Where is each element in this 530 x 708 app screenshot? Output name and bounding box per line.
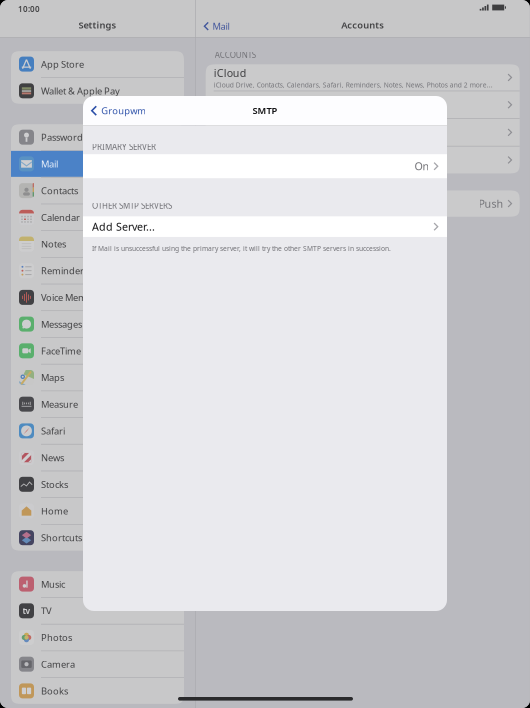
button[interactable]: Safari [11,418,184,444]
staticText: Measure [41,398,78,410]
button[interactable]: Mail [11,151,184,177]
staticText: Accounts [341,19,384,31]
button[interactable]: Push [206,190,520,217]
staticText: Passwords [41,131,87,143]
button[interactable]: Notes [11,231,184,257]
staticText: Photos [41,631,72,644]
staticText: Groupwm [101,104,146,117]
button[interactable]: Books [11,678,184,704]
staticText: SMTP [252,104,277,117]
button[interactable]: On [83,154,447,178]
button[interactable]: Maps [11,364,184,390]
staticText: Mail [41,158,58,170]
staticText: Wallet & Apple Pay [41,85,120,97]
button[interactable]: tv [11,598,184,624]
staticText: Push [478,196,503,211]
staticText: tv [22,605,30,616]
staticText: App Store [41,58,84,70]
staticText: Music [41,578,65,590]
button[interactable]: Messages [11,311,184,337]
staticText: Messages [41,318,82,330]
staticText: OTHER SMTP SERVERS [92,200,172,211]
staticText: Reminders [41,264,88,277]
button[interactable]: Camera [11,651,184,677]
button[interactable]: Account [206,146,520,173]
button[interactable]: FaceTime [11,338,184,364]
button[interactable]: Voice Memos [11,284,184,310]
staticText: Add Server... [92,220,155,234]
staticText: On [414,159,429,173]
button[interactable]: Photos [11,624,184,650]
button[interactable]: Account [206,91,520,118]
button[interactable]: Home [11,498,184,524]
staticText: FaceTime [41,345,81,357]
staticText: Maps [41,371,64,384]
button[interactable]: Add Server... [83,216,447,237]
button[interactable]: App Store [11,51,184,77]
staticText: Notes [41,238,66,250]
button[interactable]: Measure [11,391,184,417]
button[interactable]: Wallet & Apple Pay [11,78,184,104]
staticText: Mail [213,20,230,32]
button[interactable]: iCloud [206,64,520,91]
staticText: Calendar [41,211,80,223]
staticText: Camera [41,658,75,670]
staticText: iCloud Drive, Contacts, Calendars, Safar… [214,80,493,89]
staticText: iCloud [214,66,247,80]
staticText: PRIMARY SERVER [92,142,156,152]
staticText: Voice Memos [41,291,97,304]
staticText: Settings [78,19,116,31]
button[interactable]: News [11,445,184,471]
staticText: Safari [41,425,65,437]
button[interactable]: Groupwm [83,96,150,125]
button[interactable]: Stocks [11,471,184,497]
staticText: Shortcuts [41,531,82,544]
button[interactable]: Calendar [11,204,184,230]
staticText: If Mail is unsuccessful using the primar… [92,244,391,253]
button[interactable]: Contacts [11,178,184,204]
button[interactable]: Account [206,119,520,146]
staticText: Contacts [41,184,78,197]
button[interactable]: Shortcuts [11,525,184,551]
staticText: Home [41,505,68,517]
button[interactable]: Music [11,571,184,597]
staticText: Books [41,685,68,697]
button[interactable]: Mail [196,14,235,38]
staticText: TV [41,605,52,617]
staticText: News [41,451,64,464]
staticText: 10:00 [18,3,40,14]
button[interactable]: Passwords [11,124,184,150]
button[interactable]: Reminders [11,258,184,284]
staticText: ACCOUNTS [215,50,256,60]
staticText: Stocks [41,478,68,490]
